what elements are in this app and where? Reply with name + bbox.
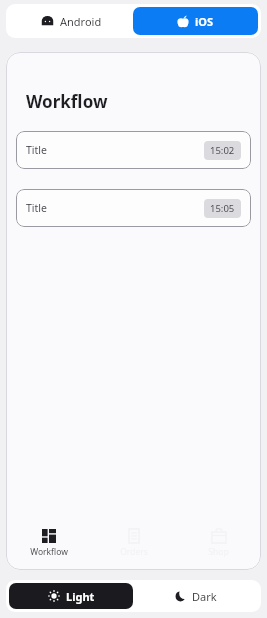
button[interactable]: Light [9,583,133,609]
staticText: Workflow [30,546,68,558]
staticText: Title [26,201,47,215]
button[interactable]: Dark [133,583,258,609]
staticText: iOS [195,14,214,29]
staticText: Android [60,14,102,29]
staticText: 15:05 [210,202,235,215]
staticText: 15:02 [210,144,235,157]
staticText: Dark [192,589,217,604]
staticText: Title [26,143,47,157]
button[interactable]: Android [9,7,133,35]
button[interactable]: iOS [133,7,258,35]
button[interactable]: Title [16,189,251,227]
button[interactable]: Workflow [6,526,91,560]
button[interactable]: Title [16,131,251,169]
staticText: Workflow [26,90,108,113]
button[interactable]: Shop [176,526,261,560]
staticText: Light [66,589,95,604]
